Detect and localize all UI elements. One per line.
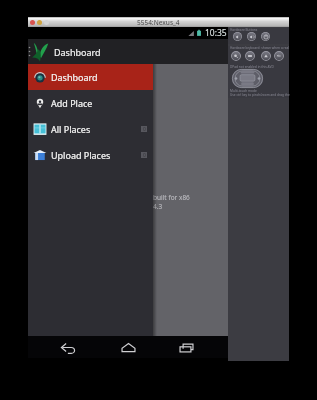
- staticText: Dashboard: [54, 46, 101, 58]
- staticText: 4.3: [153, 202, 163, 211]
- button[interactable]: Back key: [231, 51, 241, 61]
- staticText: Dashboard: [51, 71, 98, 83]
- button[interactable]: Home: [116, 336, 140, 358]
- button[interactable]: Back: [55, 336, 79, 358]
- other: Navigation drawer: [27, 46, 32, 57]
- button[interactable]: Menu key: [261, 51, 271, 61]
- button[interactable]: Add Place: [28, 90, 153, 116]
- staticText: Upload Places: [51, 149, 111, 161]
- staticText: Hardware keyboard: shown when a real key…: [230, 46, 291, 50]
- staticText: 5554:Nexus_4: [137, 18, 180, 27]
- button[interactable]: All Places: [28, 116, 153, 142]
- staticText: Hardware Buttons: [230, 28, 258, 32]
- staticText: DPad not enabled in this AVD: [230, 65, 274, 69]
- staticText: built for x86: [153, 193, 190, 202]
- staticText: 0: [143, 152, 146, 158]
- staticText: 0: [143, 126, 146, 132]
- button[interactable]: Upload Places: [28, 142, 153, 168]
- staticText: Add Place: [51, 97, 93, 109]
- button[interactable]: DPad: [232, 69, 263, 88]
- staticText: All Places: [51, 123, 91, 135]
- button[interactable]: Search key: [274, 51, 284, 61]
- staticText: Multi-touch mode: [230, 89, 257, 93]
- button[interactable]: Volume down: [233, 32, 242, 41]
- button[interactable]: Home key: [245, 51, 255, 61]
- button[interactable]: Power: [261, 32, 270, 41]
- button[interactable]: Navigation drawer: [28, 39, 228, 64]
- staticText: Use ctrl key to pinch/zoom and drag the …: [230, 93, 291, 97]
- button[interactable]: Dashboard: [28, 64, 153, 90]
- button[interactable]: Volume up: [247, 32, 256, 41]
- button[interactable]: Recent apps: [174, 336, 198, 358]
- staticText: 10:35: [205, 27, 227, 39]
